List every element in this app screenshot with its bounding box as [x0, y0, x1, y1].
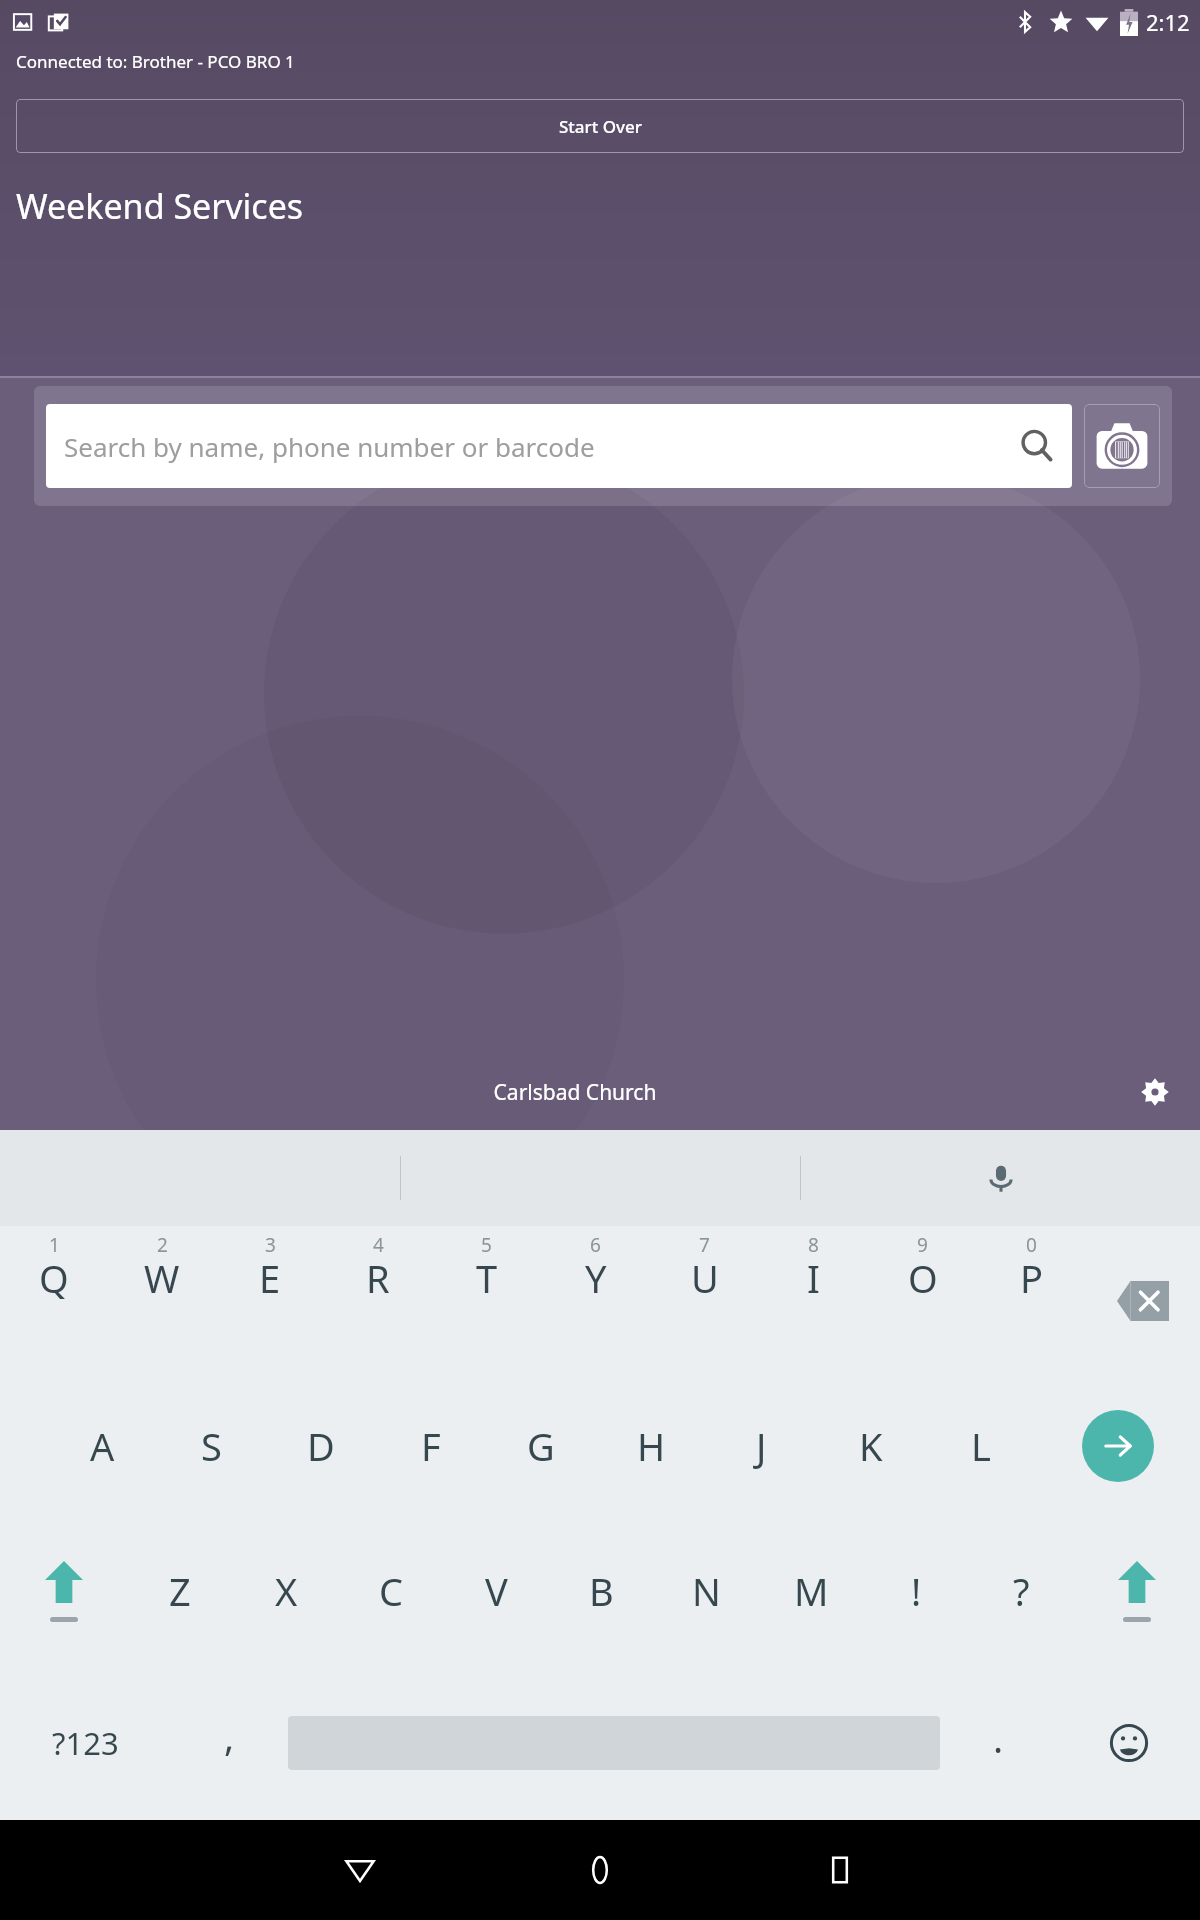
button[interactable]: !: [864, 1516, 969, 1666]
button[interactable]: K: [816, 1376, 926, 1516]
button[interactable]: V: [444, 1516, 549, 1666]
staticText: P: [1020, 1252, 1043, 1304]
staticText: Z: [169, 1565, 191, 1617]
staticText: 8: [808, 1232, 819, 1258]
button[interactable]: Back: [240, 1820, 480, 1920]
staticText: S: [201, 1420, 222, 1472]
button[interactable]: Enter, search: [1036, 1376, 1200, 1516]
staticText: 6: [590, 1232, 601, 1258]
button[interactable]: H: [596, 1376, 706, 1516]
button[interactable]: Settings: [1130, 1067, 1180, 1117]
button[interactable]: Voice input: [956, 1130, 1046, 1226]
staticText: J: [756, 1420, 767, 1472]
staticText: X: [275, 1565, 298, 1617]
staticText: A: [90, 1420, 115, 1472]
button[interactable]: Shift: [0, 1516, 127, 1666]
button[interactable]: S: [157, 1376, 266, 1516]
button[interactable]: ?: [969, 1516, 1074, 1666]
button[interactable]: 3: [216, 1226, 324, 1376]
staticText: Weekend Services: [16, 183, 304, 229]
staticText: E: [259, 1252, 281, 1304]
button[interactable]: 2: [108, 1226, 216, 1376]
staticText: 0: [1026, 1232, 1037, 1258]
staticText: 4: [373, 1232, 384, 1258]
staticText: 3: [265, 1232, 276, 1258]
button[interactable]: 8: [759, 1226, 868, 1376]
button[interactable]: 6: [541, 1226, 650, 1376]
button[interactable]: X: [233, 1516, 339, 1666]
button[interactable]: 4: [324, 1226, 432, 1376]
staticText: L: [971, 1420, 991, 1472]
staticText: ?123: [52, 1722, 119, 1764]
staticText: ,: [224, 1710, 235, 1762]
staticText: Q: [39, 1252, 69, 1304]
button[interactable]: Recent apps: [720, 1820, 960, 1920]
button[interactable]: 0: [977, 1226, 1086, 1376]
staticText: V: [485, 1565, 508, 1617]
staticText: D: [307, 1420, 335, 1472]
staticText: ?: [1013, 1565, 1030, 1617]
staticText: Start Over: [559, 115, 642, 138]
button[interactable]: Search by name, phone number or barcode: [46, 404, 1072, 488]
button[interactable]: B: [549, 1516, 654, 1666]
staticText: 7: [699, 1232, 710, 1258]
button[interactable]: Backspace: [1086, 1226, 1200, 1376]
staticText: .: [993, 1712, 1004, 1764]
button[interactable]: Start Over: [16, 99, 1184, 153]
staticText: 9: [917, 1232, 928, 1258]
staticText: H: [637, 1420, 666, 1472]
button[interactable]: Shift: [1074, 1516, 1200, 1666]
staticText: K: [859, 1420, 883, 1472]
button[interactable]: D: [266, 1376, 376, 1516]
staticText: Search by name, phone number or barcode: [64, 429, 1020, 464]
staticText: 5: [481, 1232, 492, 1258]
button[interactable]: L: [926, 1376, 1036, 1516]
button[interactable]: F: [376, 1376, 486, 1516]
button[interactable]: Space: [288, 1692, 940, 1794]
staticText: O: [908, 1252, 938, 1304]
staticText: T: [476, 1252, 498, 1304]
staticText: U: [691, 1252, 719, 1304]
staticText: B: [589, 1565, 614, 1617]
staticText: Carlsbad Church: [20, 1078, 1130, 1107]
staticText: C: [379, 1565, 404, 1617]
staticText: 1: [49, 1232, 60, 1258]
button[interactable]: ,: [171, 1666, 288, 1820]
button[interactable]: Emoji: [1057, 1666, 1200, 1820]
button[interactable]: ?123: [0, 1666, 171, 1820]
button[interactable]: 9: [868, 1226, 977, 1376]
button[interactable]: C: [339, 1516, 444, 1666]
staticText: 2:12: [1146, 7, 1190, 37]
button[interactable]: G: [486, 1376, 596, 1516]
button[interactable]: J: [706, 1376, 816, 1516]
staticText: I: [807, 1252, 820, 1304]
button[interactable]: Z: [127, 1516, 233, 1666]
staticText: F: [421, 1420, 441, 1472]
button[interactable]: Home: [480, 1820, 720, 1920]
staticText: R: [366, 1252, 390, 1304]
button[interactable]: Scan barcode with camera: [1084, 404, 1160, 488]
staticText: !: [911, 1565, 922, 1617]
button[interactable]: M: [759, 1516, 864, 1666]
staticText: 2: [157, 1232, 168, 1258]
staticText: M: [794, 1565, 829, 1617]
button[interactable]: A: [48, 1376, 157, 1516]
button[interactable]: 5: [432, 1226, 541, 1376]
button[interactable]: 1: [0, 1226, 108, 1376]
button[interactable]: 7: [650, 1226, 759, 1376]
button[interactable]: .: [940, 1666, 1057, 1820]
staticText: W: [144, 1252, 180, 1304]
button[interactable]: N: [654, 1516, 759, 1666]
staticText: Y: [585, 1252, 607, 1304]
staticText: Connected to: Brother - PCO BRO 1: [16, 50, 295, 73]
staticText: N: [692, 1565, 721, 1617]
staticText: G: [527, 1420, 555, 1472]
